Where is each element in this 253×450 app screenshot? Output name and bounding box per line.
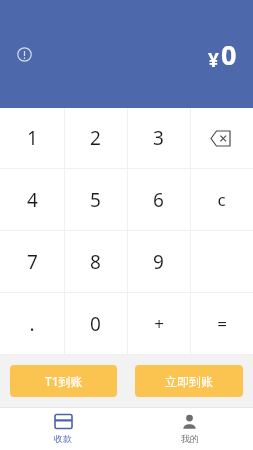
- button[interactable]: 6: [127, 169, 190, 230]
- staticText: 7: [27, 249, 38, 275]
- button[interactable]: 7: [0, 231, 64, 292]
- button[interactable]: 3: [127, 108, 190, 168]
- button[interactable]: 1: [0, 108, 64, 168]
- staticText: =: [217, 312, 227, 335]
- button[interactable]: 2: [64, 108, 127, 168]
- button[interactable]: 8: [64, 231, 127, 292]
- staticText: ¥: [208, 47, 219, 73]
- staticText: 0: [221, 36, 237, 73]
- staticText: .: [29, 311, 35, 337]
- button[interactable]: Info: [6, 36, 42, 72]
- staticText: 立即到账: [165, 374, 213, 389]
- button[interactable]: 我的: [126, 407, 253, 450]
- staticText: 5: [90, 187, 101, 213]
- staticText: 2: [90, 125, 101, 151]
- button[interactable]: 5: [64, 169, 127, 230]
- button[interactable]: 收款: [0, 407, 126, 450]
- staticText: 9: [153, 249, 164, 275]
- staticText: 1: [27, 125, 38, 151]
- button[interactable]: Backspace: [190, 108, 253, 168]
- staticText: 3: [153, 125, 164, 151]
- staticText: 6: [153, 187, 164, 213]
- button[interactable]: c: [190, 169, 253, 230]
- staticText: 4: [27, 187, 38, 213]
- button[interactable]: +: [127, 293, 190, 354]
- button[interactable]: 9: [127, 231, 190, 292]
- button[interactable]: 0: [64, 293, 127, 354]
- button[interactable]: =: [190, 293, 253, 354]
- button[interactable]: T1到账: [10, 365, 117, 397]
- button[interactable]: 立即到账: [135, 365, 243, 397]
- staticText: 0: [90, 311, 101, 337]
- button[interactable]: 4: [0, 169, 64, 230]
- staticText: +: [154, 312, 164, 335]
- staticText: 我的: [181, 433, 199, 444]
- staticText: T1到账: [45, 373, 83, 389]
- button[interactable]: .: [0, 293, 64, 354]
- staticText: 8: [90, 249, 101, 275]
- staticText: 收款: [54, 433, 72, 444]
- staticText: c: [217, 188, 226, 211]
- other: Backspace: [190, 108, 253, 168]
